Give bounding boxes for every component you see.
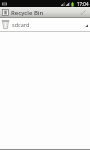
- button[interactable]: Open: [84, 23, 88, 27]
- staticText: 17:04: [77, 1, 89, 7]
- button[interactable]: Empty Recycle Bin: [78, 8, 88, 17]
- staticText: sdcard: [12, 21, 84, 28]
- button[interactable]: Recycle Bin: [0, 7, 90, 17]
- button[interactable]: sdcard: [0, 18, 90, 31]
- staticText: Recycle Bin: [11, 9, 78, 17]
